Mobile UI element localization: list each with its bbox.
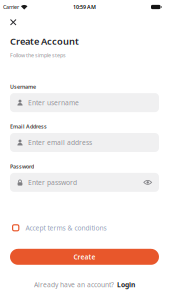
staticText: Password xyxy=(10,163,34,170)
staticText: Enter password xyxy=(28,178,77,187)
button[interactable]: Create xyxy=(10,249,159,265)
button[interactable]: Enter password xyxy=(10,173,159,192)
staticText: Username xyxy=(10,83,36,90)
button[interactable]: Accept terms & conditions xyxy=(0,223,169,232)
staticText: Enter username xyxy=(28,98,79,107)
staticText: Create xyxy=(73,252,95,261)
button[interactable]: Show password xyxy=(143,180,152,185)
button[interactable]: Close xyxy=(10,19,16,25)
staticText: Email Address xyxy=(10,123,47,130)
button[interactable]: Login xyxy=(117,280,135,289)
staticText: Enter email address xyxy=(28,138,92,147)
staticText: Carrier xyxy=(3,3,19,11)
button[interactable]: Enter email address xyxy=(10,133,159,152)
staticText: Already have an account? xyxy=(34,280,114,289)
staticText: Follow the simple steps xyxy=(10,52,66,59)
staticText: 10:59 AM xyxy=(73,3,96,11)
button[interactable]: Enter username xyxy=(10,93,159,112)
staticText: Accept terms & conditions xyxy=(25,223,106,232)
staticText: Login xyxy=(117,280,135,289)
staticText: Create Account xyxy=(10,35,79,47)
